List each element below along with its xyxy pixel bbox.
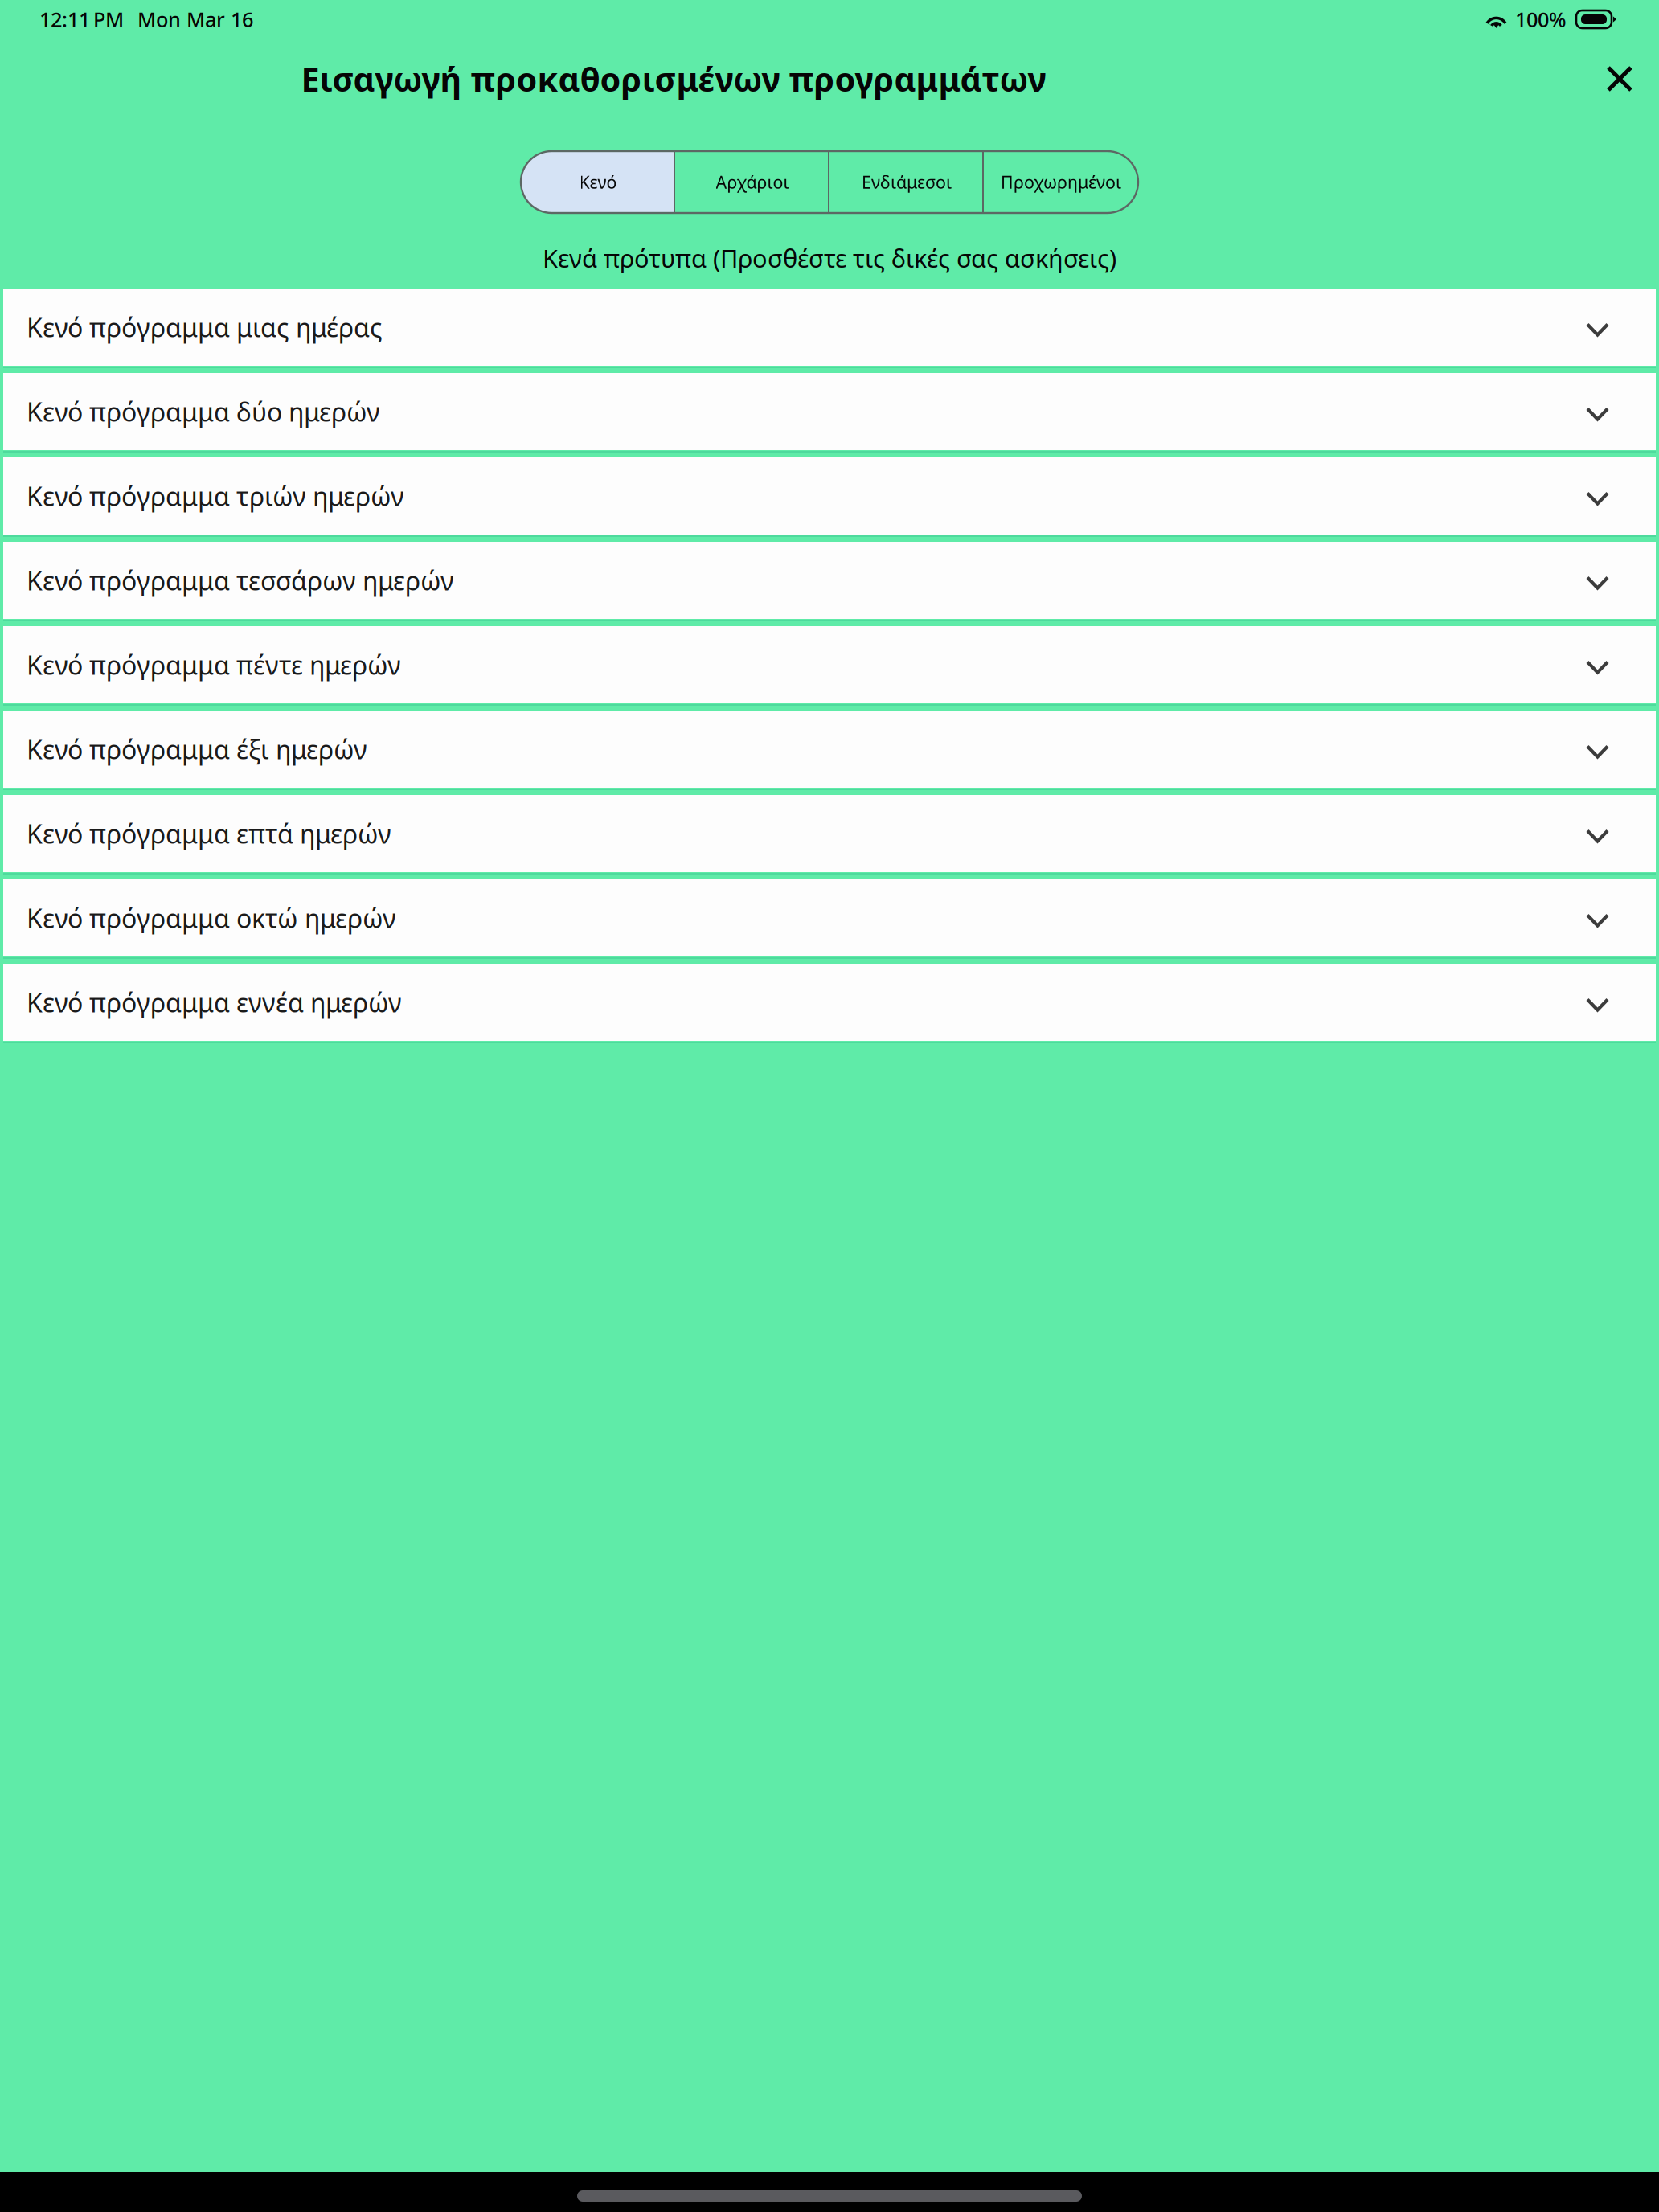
button[interactable]: Κενό πρόγραμμα εννέα ημερών	[3, 964, 1656, 1041]
button[interactable]: Κενό πρόγραμμα επτά ημερών	[3, 795, 1656, 872]
staticText: Εισαγωγή προκαθορισμένων προγραμμάτων	[301, 57, 1046, 101]
button[interactable]: Κενό πρόγραμμα δύο ημερών	[3, 373, 1656, 450]
staticText: Ενδιάμεσοι	[862, 171, 952, 193]
staticText: Προχωρημένοι	[1001, 171, 1121, 193]
staticText: Κενό πρόγραμμα τριών ημερών	[27, 479, 404, 513]
staticText: Κενό	[579, 171, 617, 193]
staticText: Mon Mar 16	[137, 6, 253, 33]
button[interactable]: Προχωρημένοι	[984, 151, 1138, 213]
staticText: Κενό πρόγραμμα έξι ημερών	[27, 732, 367, 766]
staticText: 100%	[1515, 6, 1567, 33]
staticText: Αρχάριοι	[716, 171, 789, 193]
button[interactable]: Κενό πρόγραμμα τριών ημερών	[3, 457, 1656, 535]
staticText: Κενό πρόγραμμα δύο ημερών	[27, 394, 380, 429]
button[interactable]: Κενό πρόγραμμα μιας ημέρας	[3, 289, 1656, 366]
staticText: 12:11 PM	[39, 6, 124, 33]
staticText: Κενό πρόγραμμα μιας ημέρας	[27, 310, 383, 344]
button[interactable]: Ενδιάμεσοι	[829, 151, 984, 213]
button[interactable]: Κενό πρόγραμμα οκτώ ημερών	[3, 879, 1656, 956]
button[interactable]: Κενό πρόγραμμα πέντε ημερών	[3, 626, 1656, 703]
button[interactable]: Κενό	[521, 151, 675, 213]
button[interactable]: Close	[1587, 47, 1652, 111]
staticText: Κενά πρότυπα (Προσθέστε τις δικές σας ασ…	[543, 242, 1116, 274]
button[interactable]: Κενό πρόγραμμα τεσσάρων ημερών	[3, 542, 1656, 619]
staticText: Κενό πρόγραμμα πέντε ημερών	[27, 648, 401, 682]
staticText: Κενό πρόγραμμα τεσσάρων ημερών	[27, 563, 454, 597]
staticText: Κενό πρόγραμμα επτά ημερών	[27, 816, 391, 851]
staticText: Κενό πρόγραμμα εννέα ημερών	[27, 985, 402, 1019]
staticText: Κενό πρόγραμμα οκτώ ημερών	[27, 901, 396, 935]
button[interactable]: Κενό πρόγραμμα έξι ημερών	[3, 711, 1656, 788]
button[interactable]: Αρχάριοι	[675, 151, 829, 213]
